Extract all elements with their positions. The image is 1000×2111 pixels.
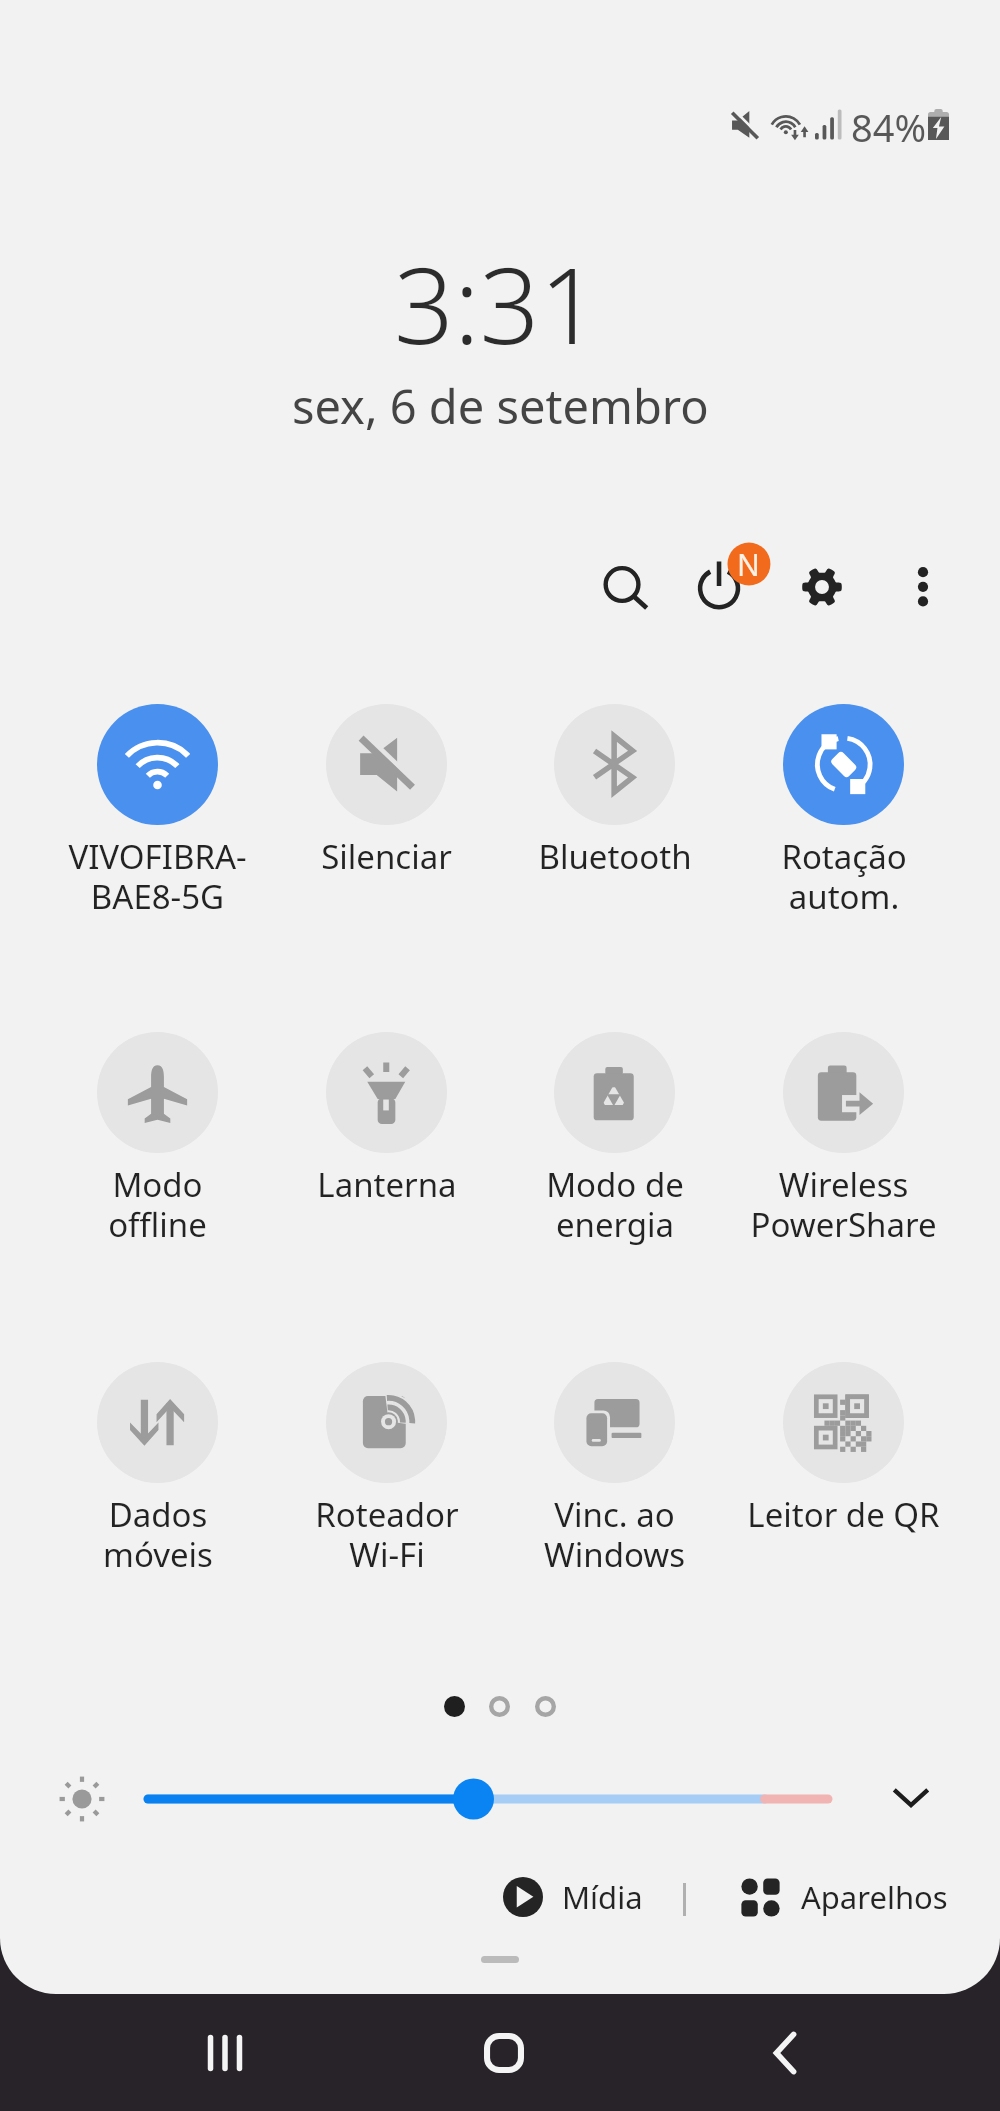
button[interactable]: Dados móveis <box>43 1356 272 1586</box>
staticText: N <box>737 544 760 585</box>
button[interactable]: Back <box>727 1995 843 2111</box>
button[interactable]: Rotação autom. <box>729 698 958 928</box>
button[interactable]: Silenciar <box>272 698 501 928</box>
staticText: Leitor de QR <box>747 1492 940 1537</box>
staticText: VIVOFIBRA- BAE8-5G <box>68 834 247 919</box>
button[interactable]: Expand brightness <box>871 1759 951 1839</box>
button[interactable]: Home <box>446 1995 562 2111</box>
staticText: Silenciar <box>321 834 452 879</box>
button[interactable]: Vinc. ao Windows <box>500 1356 729 1586</box>
button[interactable]: VIVOFIBRA- BAE8-5G <box>43 698 272 928</box>
staticText: Dados móveis <box>103 1492 213 1577</box>
staticText: 3:31 <box>394 232 600 375</box>
staticText: Aparelhos <box>801 1876 948 1918</box>
staticText: Mídia <box>562 1876 643 1918</box>
button[interactable]: Mídia <box>495 1870 651 1924</box>
button[interactable]: Wireless PowerShare <box>729 1026 958 1256</box>
button[interactable]: Settings <box>778 543 866 631</box>
button[interactable] <box>130 1769 846 1829</box>
staticText: sex, 6 de setembro <box>292 374 709 438</box>
staticText: Vinc. ao Windows <box>544 1492 685 1577</box>
button[interactable]: Recents <box>167 1995 283 2111</box>
staticText: Rotação autom. <box>781 834 907 919</box>
button[interactable]: Modo offline <box>43 1026 272 1256</box>
button[interactable]: Power off <box>679 543 767 631</box>
staticText: 84% <box>851 101 927 147</box>
staticText: Modo offline <box>108 1162 207 1247</box>
button[interactable]: Aparelhos <box>733 1870 956 1924</box>
button[interactable]: Modo de energia <box>500 1026 729 1256</box>
staticText: Roteador Wi-Fi <box>315 1492 459 1577</box>
staticText: Modo de energia <box>546 1162 684 1247</box>
staticText: Wireless PowerShare <box>750 1162 937 1247</box>
button[interactable]: More options <box>879 543 967 631</box>
button[interactable]: Roteador Wi-Fi <box>272 1356 501 1586</box>
button[interactable]: Lanterna <box>272 1026 501 1256</box>
button[interactable]: Leitor de QR <box>729 1356 958 1586</box>
button[interactable]: Search <box>582 543 670 631</box>
staticText: Bluetooth <box>538 834 692 879</box>
staticText: Lanterna <box>317 1162 457 1207</box>
button[interactable]: Bluetooth <box>500 698 729 928</box>
